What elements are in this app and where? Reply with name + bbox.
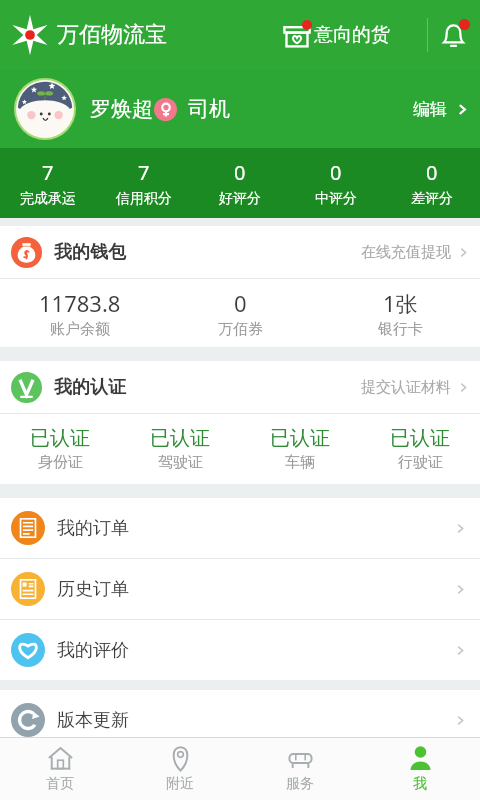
staticText: 好评分: [219, 190, 261, 208]
staticText: 0: [330, 159, 342, 186]
staticText: 版本更新: [57, 709, 129, 732]
button[interactable]: 已认证: [360, 414, 480, 484]
staticText: 1张: [383, 288, 418, 318]
staticText: 首页: [46, 775, 74, 793]
staticText: 车辆: [285, 453, 315, 472]
staticText: 我的钱包: [54, 241, 126, 264]
staticText: 我的评价: [57, 639, 129, 662]
button[interactable]: 我的订单: [0, 498, 480, 558]
staticText: 驾驶证: [158, 453, 203, 472]
button[interactable]: 已认证: [0, 414, 120, 484]
staticText: 0: [234, 159, 246, 186]
button[interactable]: 7: [0, 148, 96, 218]
button[interactable]: 服务: [240, 738, 360, 800]
staticText: 服务: [286, 775, 314, 793]
staticText: 行驶证: [398, 453, 443, 472]
staticText: 完成承运: [20, 190, 76, 208]
button[interactable]: 附近: [120, 738, 240, 800]
staticText: 万佰券: [218, 320, 263, 339]
button[interactable]: 版本更新: [0, 690, 480, 750]
staticText: 编辑: [413, 99, 447, 120]
button[interactable]: 0: [192, 148, 288, 218]
staticText: 附近: [166, 775, 194, 793]
staticText: 已认证: [30, 426, 90, 451]
staticText: 司机: [188, 96, 230, 122]
staticText: 历史订单: [57, 578, 129, 601]
staticText: 0: [426, 159, 438, 186]
staticText: 我的订单: [57, 517, 129, 540]
staticText: 罗焕超: [90, 96, 153, 122]
button[interactable]: 历史订单: [0, 559, 480, 619]
button[interactable]: 0: [160, 279, 320, 347]
staticText: 7: [138, 159, 150, 186]
staticText: 信用积分: [116, 190, 172, 208]
button[interactable]: 我: [360, 738, 480, 800]
button[interactable]: 我的钱包: [0, 226, 480, 278]
button[interactable]: 编辑: [405, 89, 478, 130]
staticText: 中评分: [315, 190, 357, 208]
staticText: 提交认证材料: [361, 378, 451, 397]
staticText: 我: [413, 775, 427, 793]
staticText: 已认证: [150, 426, 210, 451]
staticText: 在线充值提现: [361, 243, 451, 262]
staticText: 差评分: [411, 190, 453, 208]
button[interactable]: 我的评价: [0, 620, 480, 680]
staticText: 账户余额: [50, 320, 110, 339]
button[interactable]: 已认证: [120, 414, 240, 484]
button[interactable]: 7: [96, 148, 192, 218]
staticText: 意向的货: [314, 23, 390, 47]
button[interactable]: Notifications: [432, 14, 474, 56]
staticText: 身份证: [38, 453, 83, 472]
button[interactable]: 意向的货: [280, 14, 392, 56]
staticText: 0: [234, 288, 247, 318]
staticText: 7: [42, 159, 54, 186]
button[interactable]: 我的认证: [0, 361, 480, 413]
staticText: 已认证: [390, 426, 450, 451]
staticText: 我的认证: [54, 376, 126, 399]
button[interactable]: 首页: [0, 738, 120, 800]
staticText: 11783.8: [39, 288, 121, 318]
button[interactable]: 已认证: [240, 414, 360, 484]
button[interactable]: 1张: [320, 279, 480, 347]
button[interactable]: 11783.8: [0, 279, 160, 347]
button[interactable]: 0: [288, 148, 384, 218]
button[interactable]: 0: [384, 148, 480, 218]
staticText: 万佰物流宝: [57, 21, 167, 49]
staticText: 银行卡: [378, 320, 423, 339]
button[interactable]: Avatar: [14, 78, 76, 140]
staticText: 已认证: [270, 426, 330, 451]
